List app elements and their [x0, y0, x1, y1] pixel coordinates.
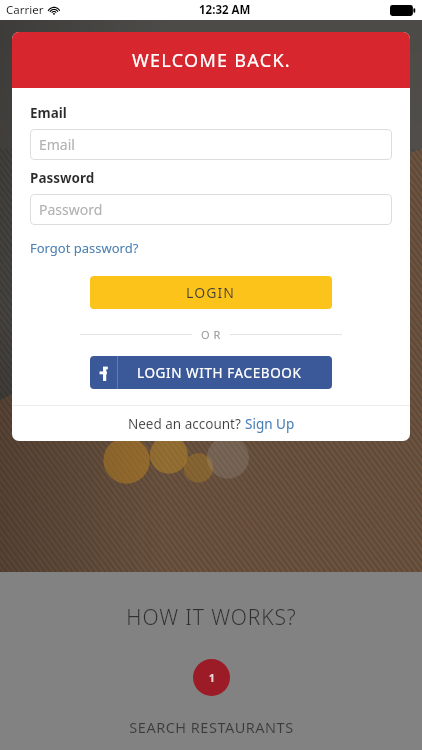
staticText: 1: [209, 671, 215, 685]
staticText: Email: [39, 135, 75, 154]
staticText: O R: [201, 327, 221, 342]
staticText: LOGIN: [186, 283, 236, 302]
button[interactable]: Password: [30, 194, 392, 225]
button[interactable]: Email: [30, 129, 392, 160]
button[interactable]: Sign Up: [245, 415, 295, 433]
button[interactable]: Forgot password?: [30, 239, 139, 257]
staticText: Password: [30, 169, 95, 187]
staticText: Email: [30, 104, 67, 122]
staticText: Need an account?: [128, 415, 245, 433]
staticText: WELCOME BACK.: [132, 48, 291, 73]
other: Facebook: [96, 365, 112, 381]
staticText: HOW IT WORKS?: [126, 603, 297, 632]
staticText: Password: [39, 200, 103, 219]
staticText: SEARCH RESTAURANTS: [129, 717, 294, 737]
staticText: 12:32 AM: [199, 2, 251, 18]
button[interactable]: LOGIN: [90, 276, 332, 309]
button[interactable]: Facebook: [90, 356, 332, 389]
staticText: LOGIN WITH FACEBOOK: [137, 364, 302, 382]
staticText: Carrier: [6, 2, 44, 18]
